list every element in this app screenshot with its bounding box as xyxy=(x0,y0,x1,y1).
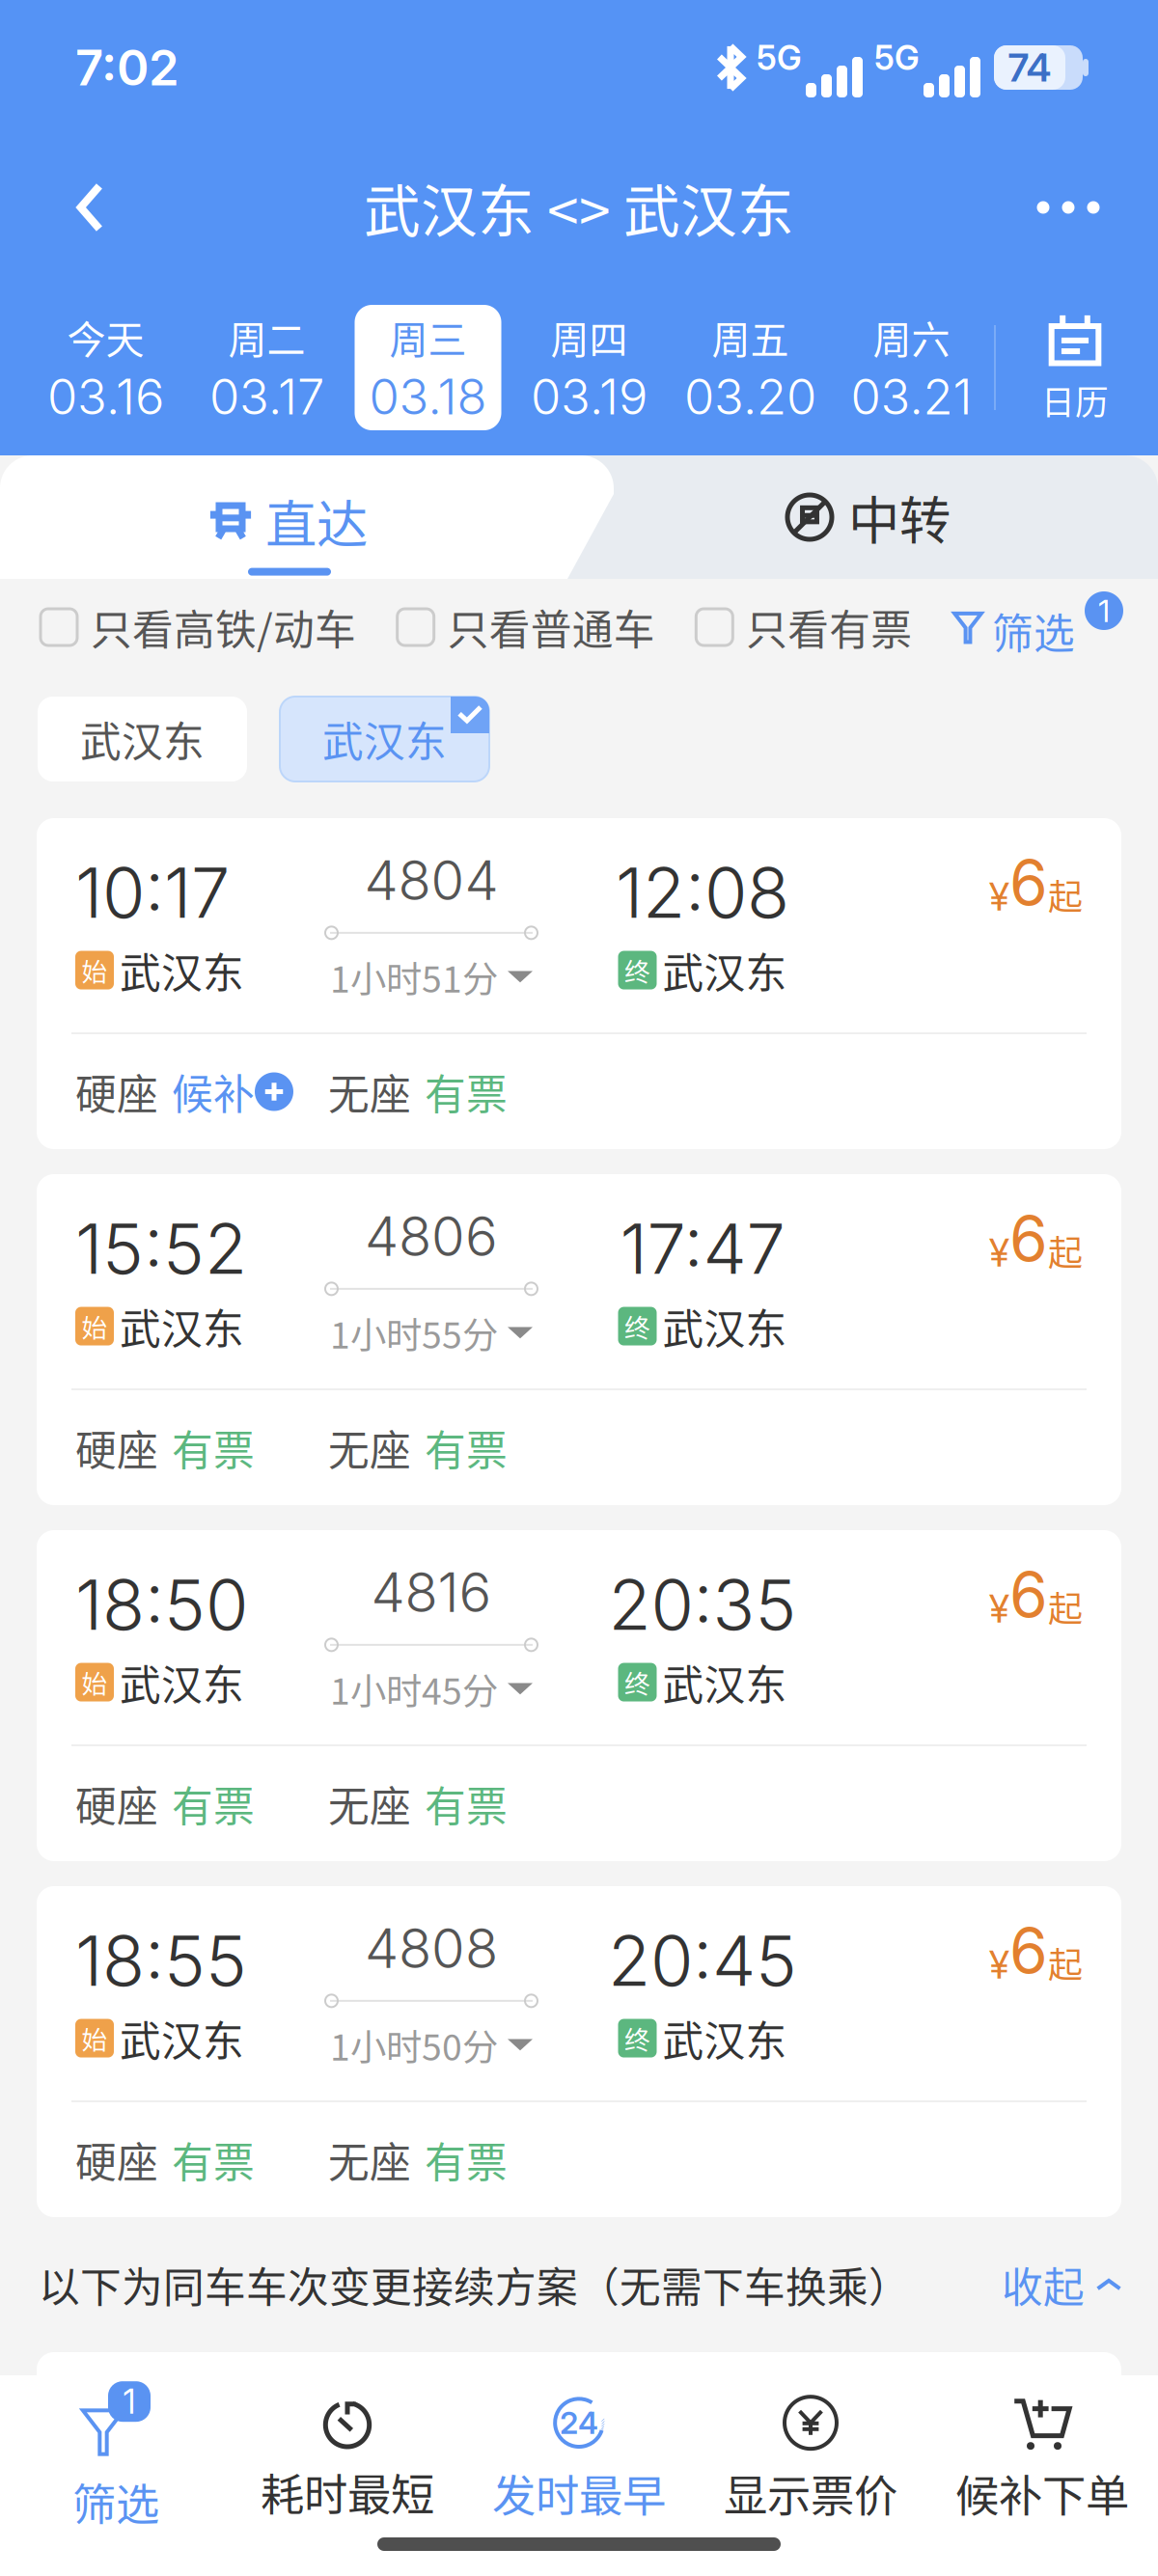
staticText: 武汉东 xyxy=(120,1652,244,1712)
staticText: 03.17 xyxy=(209,367,324,426)
button[interactable]: 直达 xyxy=(0,455,579,579)
staticText: 武汉东 xyxy=(120,1296,244,1356)
button[interactable]: 今天 xyxy=(25,280,186,455)
staticText: 周五 xyxy=(712,309,789,365)
staticText: 1 xyxy=(1098,592,1110,629)
staticText: 终 xyxy=(624,2020,650,2057)
staticText: 无座 xyxy=(328,1062,411,1121)
staticText: 10:17 xyxy=(75,851,230,935)
button[interactable]: 筛选 xyxy=(953,591,1123,663)
staticText: 硬座 xyxy=(75,1062,158,1121)
staticText: 日历 xyxy=(1041,376,1109,425)
staticText: 6 xyxy=(1009,1913,1048,1988)
staticText: 周二 xyxy=(228,309,305,365)
staticText: 6 xyxy=(1009,1201,1048,1276)
button[interactable]: 武汉东 xyxy=(280,697,489,781)
staticText: 1小时51分 xyxy=(330,951,498,1003)
staticText: 有票 xyxy=(425,2130,508,2190)
staticText: 起 xyxy=(1048,1582,1083,1632)
staticText: 24 xyxy=(560,2404,598,2441)
staticText: 15:52 xyxy=(75,1207,247,1291)
staticText: 硬座 xyxy=(75,1774,158,1833)
button[interactable]: 只看普通车 xyxy=(397,597,655,657)
button[interactable]: 武汉东 xyxy=(38,697,247,781)
button[interactable]: 周五 xyxy=(670,280,831,455)
staticText: 武汉东 xyxy=(662,2008,787,2068)
staticText: 武汉东 xyxy=(80,709,205,769)
staticText: 终 xyxy=(624,1664,650,1701)
staticText: 硬座 xyxy=(75,2130,158,2190)
staticText: 中转 xyxy=(848,480,951,554)
staticText: 17:47 xyxy=(620,1207,785,1291)
staticText: 始 xyxy=(82,1664,108,1701)
staticText: 武汉东 xyxy=(662,940,787,1000)
button[interactable]: 中转 xyxy=(579,455,1158,579)
staticText: 1小时55分 xyxy=(330,1307,498,1359)
button[interactable]: 收起 xyxy=(1002,2255,1121,2314)
staticText: 始 xyxy=(82,2020,108,2057)
staticText: 显示票价 xyxy=(724,2461,897,2525)
staticText: 始 xyxy=(82,1308,108,1345)
staticText: 周三 xyxy=(389,309,467,365)
button[interactable]: 15:52 xyxy=(37,1174,1121,1505)
staticText: 5G xyxy=(757,38,802,78)
button[interactable]: 周三 xyxy=(347,280,509,455)
staticText: 03.16 xyxy=(47,367,164,426)
staticText: 以下为同车车次变更接续方案（无需下车换乘） xyxy=(39,2255,910,2314)
staticText: 有票 xyxy=(172,2130,255,2190)
staticText: 无座 xyxy=(328,1418,411,1477)
staticText: 硬座 xyxy=(75,1418,158,1477)
staticText: 今天 xyxy=(67,309,144,365)
button[interactable]: 18:55 xyxy=(37,1886,1121,2217)
staticText: 6 xyxy=(1009,1557,1048,1632)
staticText: 起 xyxy=(1048,1226,1083,1276)
staticText: 1 xyxy=(123,2381,136,2422)
button[interactable]: 10:17 xyxy=(37,818,1121,1149)
staticText: 武汉东 xyxy=(120,2008,244,2068)
button[interactable]: 周六 xyxy=(831,280,992,455)
staticText: 起 xyxy=(1048,1938,1083,1988)
button[interactable]: 耗时最短 xyxy=(232,2375,463,2522)
staticText: 03.18 xyxy=(369,367,487,426)
staticText: 有票 xyxy=(425,1062,508,1121)
staticText: 始 xyxy=(82,952,108,989)
staticText: 武汉东 <> 武汉东 xyxy=(364,166,794,248)
button[interactable]: Back xyxy=(27,150,152,265)
button[interactable]: 只看有票 xyxy=(696,597,912,657)
button[interactable]: 18:50 xyxy=(37,1530,1121,1861)
staticText: 无座 xyxy=(328,1774,411,1833)
staticText: 武汉东 xyxy=(662,1296,787,1356)
staticText: 有票 xyxy=(425,1774,508,1833)
staticText: ¥ xyxy=(989,1585,1009,1632)
staticText: 03.20 xyxy=(684,367,816,426)
staticText: 1小时45分 xyxy=(330,1663,498,1715)
button[interactable]: More options xyxy=(1006,150,1131,265)
staticText: ¥ xyxy=(989,873,1009,920)
staticText: 候补 xyxy=(172,1062,255,1121)
button[interactable]: 周四 xyxy=(509,280,670,455)
button[interactable]: 1 xyxy=(0,2375,232,2522)
staticText: 4808 xyxy=(365,1916,498,1981)
staticText: 直达 xyxy=(265,484,368,558)
staticText: 7:02 xyxy=(75,38,179,97)
staticText: 候补下单 xyxy=(955,2461,1129,2525)
staticText: 03.21 xyxy=(851,367,972,426)
button[interactable]: 候补下单 xyxy=(926,2375,1158,2522)
staticText: 03.19 xyxy=(531,367,648,426)
staticText: 4816 xyxy=(371,1560,492,1625)
staticText: 18:55 xyxy=(75,1919,247,2003)
staticText: 只看有票 xyxy=(746,597,912,657)
staticText: 12:08 xyxy=(616,851,789,935)
staticText: 20:35 xyxy=(608,1563,797,1647)
staticText: 有票 xyxy=(425,1418,508,1477)
button[interactable]: 24 xyxy=(463,2375,695,2522)
staticText: 1小时50分 xyxy=(330,2019,498,2071)
staticText: 5G xyxy=(874,38,920,78)
staticText: ¥ xyxy=(989,1941,1009,1988)
button[interactable]: 只看高铁/动车 xyxy=(41,597,356,657)
staticText: 武汉东 xyxy=(662,1652,787,1712)
button[interactable]: 显示票价 xyxy=(695,2375,926,2522)
staticText: 耗时最短 xyxy=(261,2460,434,2524)
button[interactable]: Calendar xyxy=(1009,295,1141,440)
button[interactable]: 周二 xyxy=(186,280,347,455)
